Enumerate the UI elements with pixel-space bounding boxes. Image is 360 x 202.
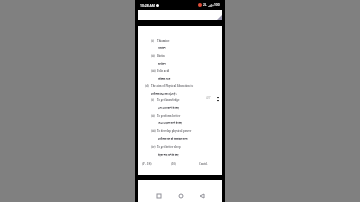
staticText: Biotin [157, 54, 165, 58]
staticText: (i) [151, 98, 154, 102]
staticText: The aim of Physical Education is: [151, 84, 194, 88]
staticText: To perform better [157, 114, 181, 118]
staticText: ज्ञान प्राप्त करने के लिए [158, 106, 179, 109]
staticText: (ii) [151, 114, 155, 118]
staticText: (d) [145, 84, 149, 88]
staticText: 100 [214, 3, 220, 7]
staticText: बेहतर नींद पाने के लिए [158, 153, 179, 156]
staticText: 4/7 [206, 96, 211, 100]
button[interactable]: Recents [153, 190, 165, 202]
staticText: फोलिक अम्ल [158, 77, 171, 80]
staticText: (iv) [151, 145, 156, 149]
staticText: Contd. [199, 162, 208, 166]
staticText: शारीरिक शिक्षा का उद्देश्य है । [151, 92, 177, 95]
staticText: (10) [171, 162, 176, 166]
staticText: To get knowledge [157, 98, 180, 102]
staticText: Thiamine [157, 39, 170, 43]
staticText: 10:28 AM [140, 3, 155, 8]
staticText: (i) [151, 39, 154, 43]
staticText: Folic acid [157, 69, 170, 73]
staticText: शारीरिक गति को विकसित करना [158, 137, 188, 140]
staticText: (iii) [151, 129, 156, 133]
staticText: 2L [203, 3, 207, 7]
staticText: थायमिन [158, 46, 166, 49]
staticText: To develop physical power [157, 129, 192, 133]
button[interactable]: Home [175, 190, 187, 202]
button[interactable]: Back [196, 190, 208, 202]
staticText: (ii) [151, 54, 155, 58]
staticText: To get better sleep [157, 145, 181, 149]
staticText: (P - 5/8) [142, 162, 152, 166]
staticText: अच्छा प्रदर्शन करने के लिए [158, 121, 183, 124]
staticText: बायोटिन [158, 62, 166, 65]
staticText: (iii) [151, 69, 156, 73]
